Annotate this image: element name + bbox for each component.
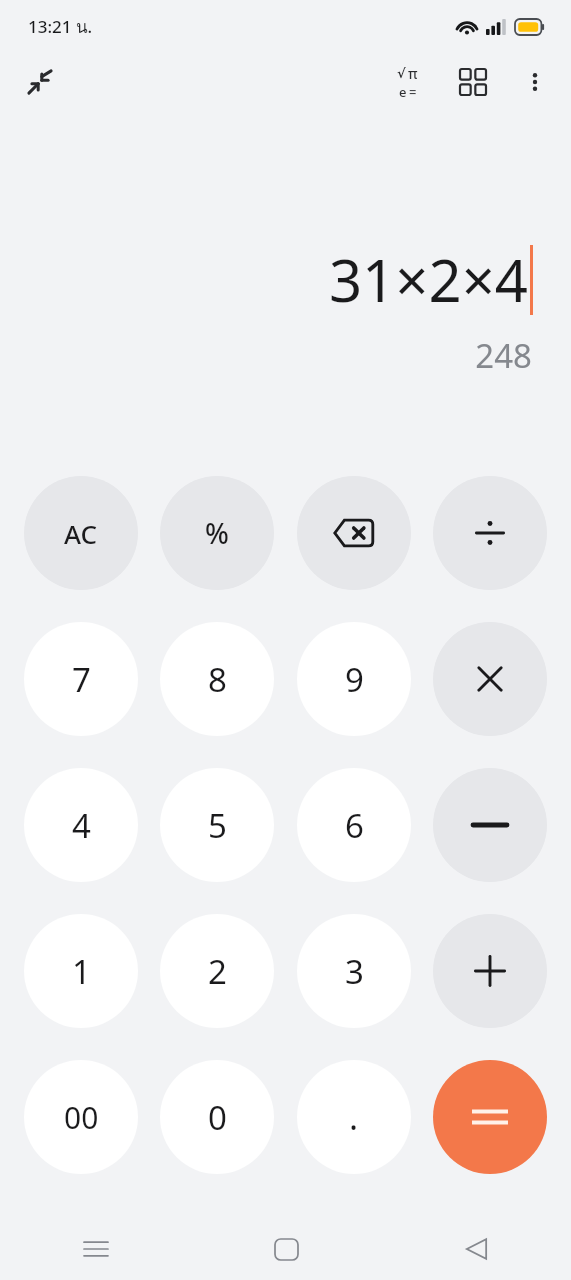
- staticText: 31×2×4: [328, 240, 528, 319]
- button[interactable]: Divide: [433, 476, 547, 590]
- staticText: 1: [72, 949, 91, 994]
- button[interactable]: 8: [160, 622, 274, 736]
- button[interactable]: 9: [297, 622, 411, 736]
- staticText: AC: [64, 516, 98, 551]
- button[interactable]: 3: [297, 914, 411, 1028]
- staticText: =: [409, 83, 417, 101]
- button[interactable]: Back: [381, 1218, 571, 1280]
- staticText: 5: [208, 803, 227, 848]
- button[interactable]: Home: [191, 1218, 381, 1280]
- button[interactable]: 6: [297, 768, 411, 882]
- staticText: 13:21 น.: [28, 13, 93, 40]
- staticText: e: [399, 83, 407, 101]
- staticText: π: [408, 64, 418, 83]
- button[interactable]: Plus: [433, 914, 547, 1028]
- staticText: 00: [64, 1097, 99, 1138]
- staticText: 6: [345, 803, 364, 848]
- staticText: √: [397, 66, 406, 81]
- button[interactable]: 2: [160, 914, 274, 1028]
- button[interactable]: 7: [24, 622, 138, 736]
- staticText: .: [349, 1094, 359, 1140]
- button[interactable]: %: [160, 476, 274, 590]
- staticText: 9: [345, 657, 364, 702]
- button[interactable]: Multiply: [433, 622, 547, 736]
- button[interactable]: Backspace: [297, 476, 411, 590]
- button[interactable]: 4: [24, 768, 138, 882]
- button[interactable]: Unit converter: [447, 56, 499, 108]
- button[interactable]: 00: [24, 1060, 138, 1174]
- button[interactable]: AC: [24, 476, 138, 590]
- staticText: 2: [208, 949, 227, 994]
- button[interactable]: 5: [160, 768, 274, 882]
- staticText: 8: [208, 657, 227, 702]
- button[interactable]: Recent apps: [0, 1218, 191, 1280]
- button[interactable]: 1: [24, 914, 138, 1028]
- button[interactable]: Equals: [433, 1060, 547, 1174]
- button[interactable]: Minus: [433, 768, 547, 882]
- button[interactable]: Collapse: [14, 56, 66, 108]
- staticText: 3: [345, 949, 364, 994]
- button[interactable]: .: [297, 1060, 411, 1174]
- staticText: 0: [208, 1095, 227, 1140]
- button[interactable]: Scientific mode: [381, 56, 433, 108]
- staticText: 4: [72, 803, 91, 848]
- button[interactable]: More options: [509, 56, 561, 108]
- staticText: 7: [72, 657, 91, 702]
- staticText: 248: [475, 333, 532, 378]
- staticText: %: [205, 514, 229, 552]
- button[interactable]: 0: [160, 1060, 274, 1174]
